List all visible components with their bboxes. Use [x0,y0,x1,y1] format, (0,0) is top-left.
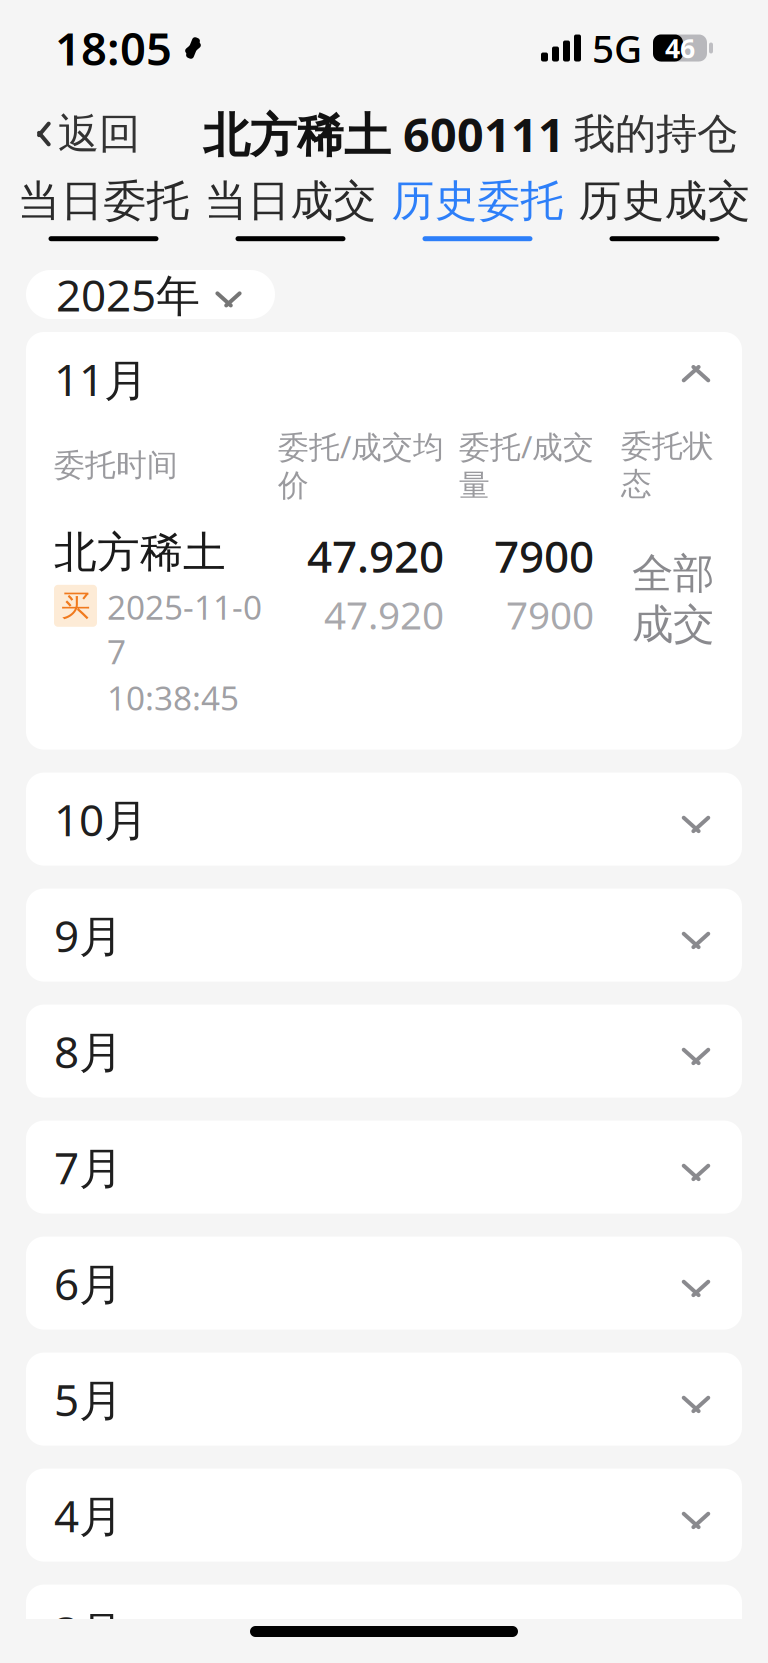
button[interactable]: 当日委托 [10,172,197,244]
staticText: 8月 [54,1022,123,1080]
staticText: 4月 [54,1486,123,1544]
staticText: 2025年 [56,265,200,324]
staticText: 北方稀土 [54,526,226,579]
staticText: 11月 [54,350,148,408]
staticText: 买 [61,588,90,624]
staticText: 10:38:45 [107,675,239,720]
button[interactable]: 2025年 [26,270,275,319]
staticText: 5月 [54,1370,123,1428]
staticText: 47.920 [324,589,444,640]
staticText: 9月 [54,906,123,964]
staticText: 5G [592,22,642,74]
button[interactable]: 当日成交 [197,172,384,244]
staticText: 全部成交 [632,548,714,650]
button[interactable]: 10月 [26,773,742,866]
button[interactable]: 返回 [8,104,162,164]
staticText: 委托时间 [54,446,178,484]
staticText: 历史委托 [391,175,563,227]
staticText: 6月 [54,1254,123,1312]
staticText: 7月 [54,1138,123,1196]
button[interactable]: 5月 [26,1353,742,1446]
staticText: 46 [665,30,695,66]
staticText: 7900 [494,526,594,585]
button[interactable]: 11月 [26,332,742,426]
staticText: 返回 [58,109,140,159]
button[interactable]: 7月 [26,1121,742,1214]
button[interactable]: 9月 [26,889,742,982]
staticText: 47.920 [307,526,444,585]
staticText: 委托状态 [621,427,714,503]
button[interactable]: 历史委托 [384,172,571,244]
button[interactable]: 3月 [26,1585,742,1663]
staticText: 历史成交 [578,175,750,227]
button[interactable]: 6月 [26,1237,742,1330]
staticText: 北方稀土 600111 [203,103,565,165]
staticText: 我的持仓 [574,109,738,159]
button[interactable]: 8月 [26,1005,742,1098]
button[interactable]: 4月 [26,1469,742,1562]
button[interactable]: 北方稀土 [26,526,742,750]
button[interactable]: 历史成交 [571,172,758,244]
staticText: 7900 [506,589,594,640]
button[interactable]: 我的持仓 [552,104,760,164]
staticText: 委托/成交量 [459,426,594,504]
staticText: 2025-11-07 [107,585,262,673]
staticText: 18:05 [55,18,172,78]
staticText: 委托/成交均价 [278,426,444,504]
staticText: 3月 [54,1602,123,1660]
staticText: 当日委托 [17,175,189,227]
staticText: 10月 [54,790,148,848]
staticText: 当日成交 [204,175,376,227]
